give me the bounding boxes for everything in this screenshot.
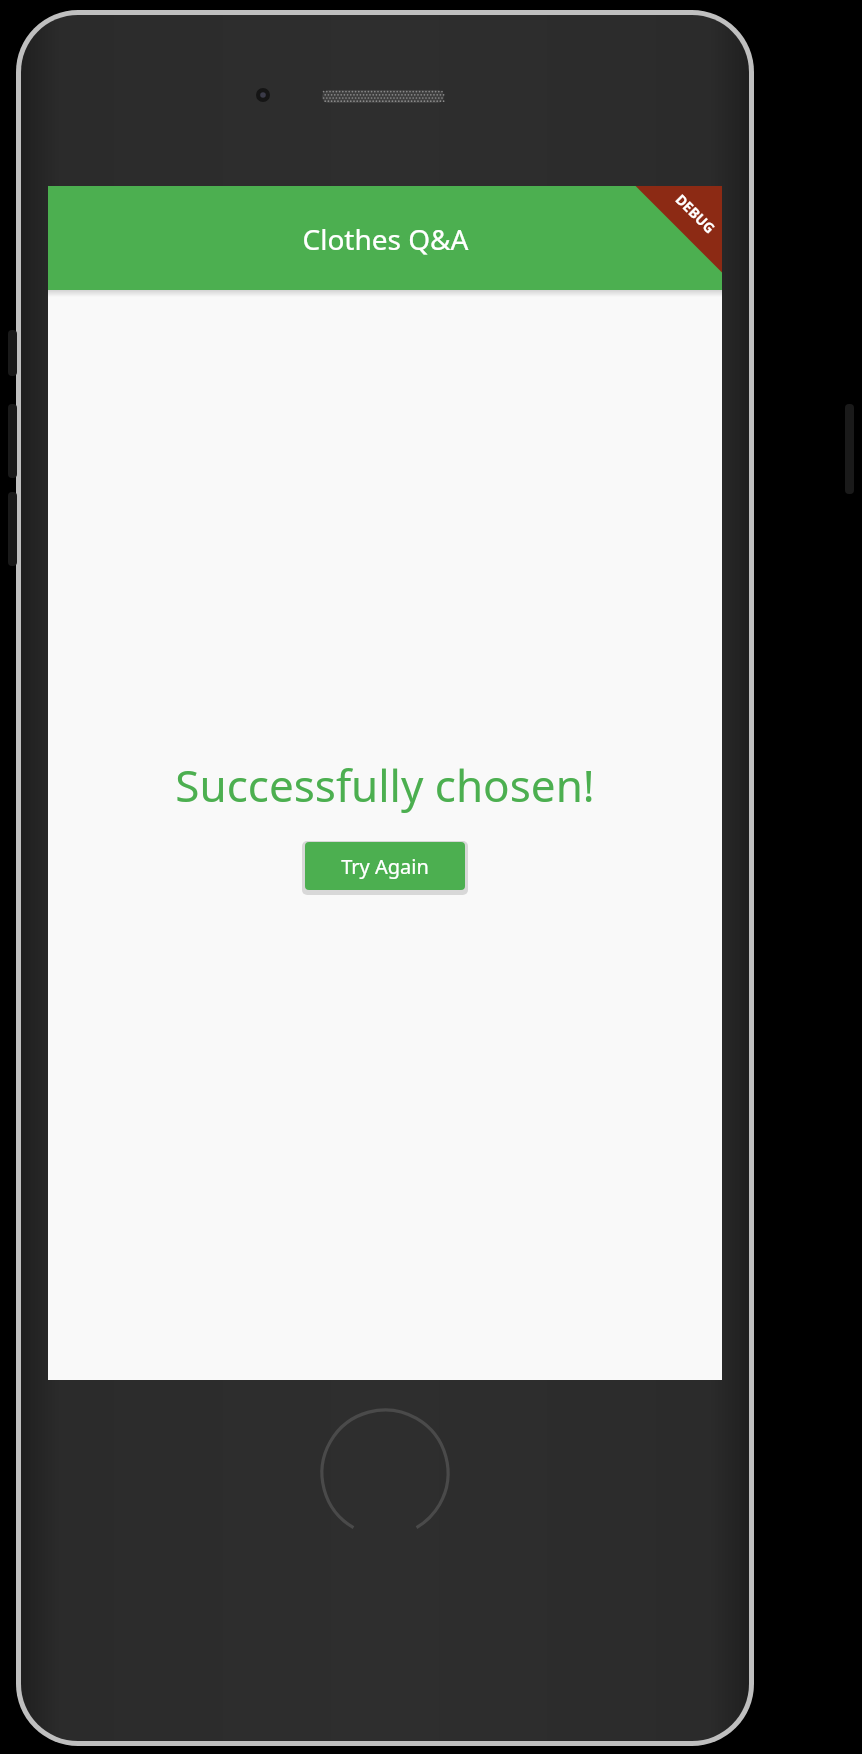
staticText: Successfully chosen!: [175, 755, 595, 815]
staticText: Clothes Q&A: [302, 220, 469, 258]
button[interactable]: Try Again: [305, 842, 465, 890]
staticText: Try Again: [341, 853, 429, 880]
staticText: DEBUG: [671, 189, 720, 238]
